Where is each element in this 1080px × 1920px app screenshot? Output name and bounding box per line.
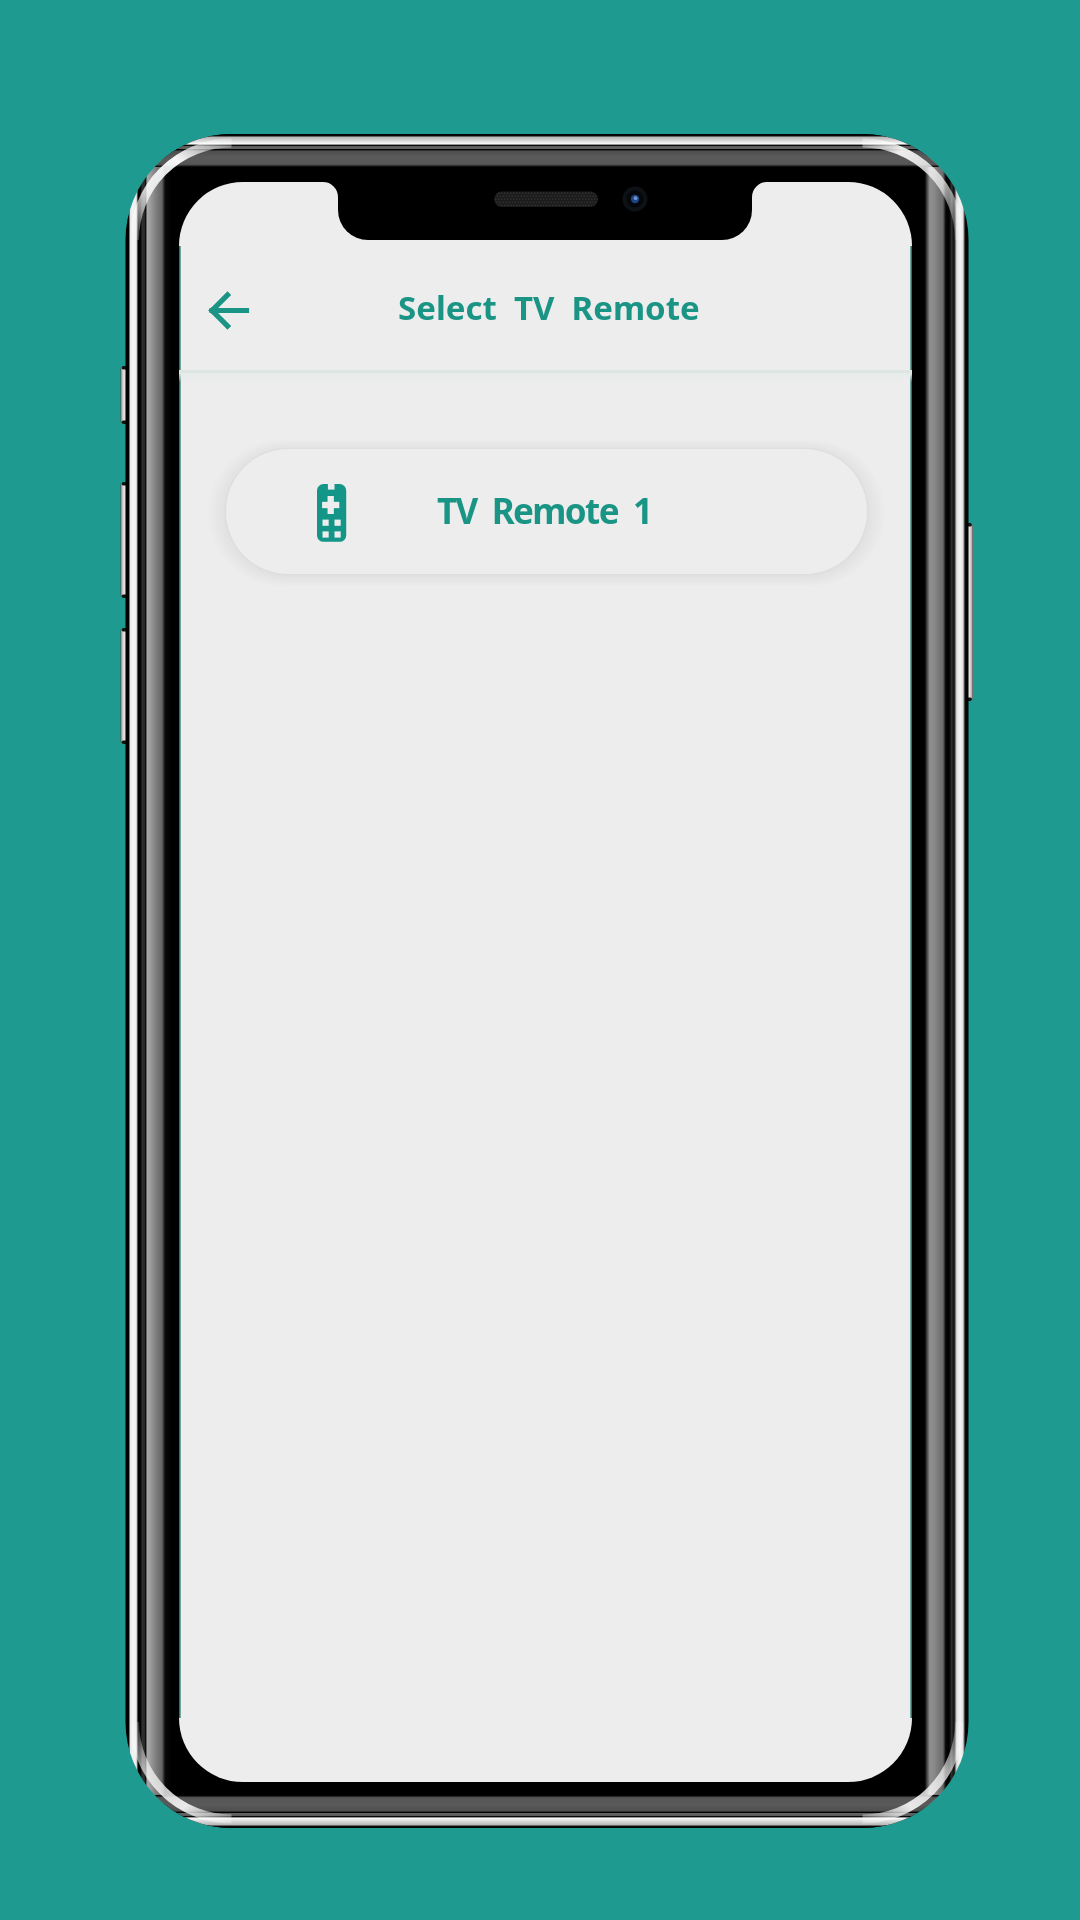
staticText: TV Remote 1 <box>437 487 652 535</box>
staticText: Select TV Remote <box>398 285 700 330</box>
button[interactable]: TV Remote 1 <box>226 449 867 574</box>
button[interactable]: Back <box>195 277 262 344</box>
